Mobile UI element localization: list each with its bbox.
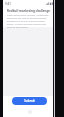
staticText: Lorem ipsum dolor sit amet, consectetur … — [7, 14, 52, 29]
staticText: 9:41 — [5, 2, 11, 6]
button[interactable]: Submit — [12, 97, 47, 105]
other: Home — [28, 110, 32, 114]
staticText: Submit — [24, 99, 35, 103]
staticText: Redbull marketing challenge — [7, 9, 51, 13]
